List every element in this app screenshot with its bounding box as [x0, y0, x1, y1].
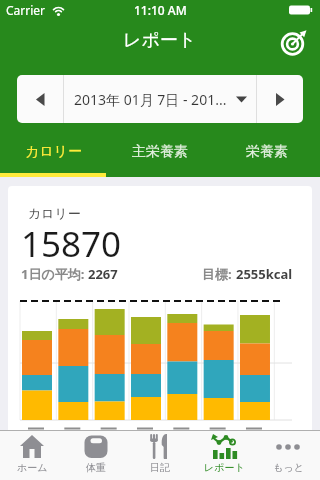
staticText: 目標: [202, 265, 236, 283]
staticText: 1日の平均: [21, 265, 88, 283]
staticText: 主栄養素 [132, 143, 188, 161]
staticText: 2267 [88, 265, 118, 283]
staticText: レポート [204, 461, 245, 474]
button[interactable]: 主栄養素 [106, 128, 213, 177]
button[interactable]: 栄養素 [213, 128, 320, 177]
staticText: ホーム [17, 461, 48, 474]
button[interactable]: 2013年 01月 7日 - 201... [64, 75, 256, 123]
staticText: 2013年 01月 7日 - 201... [74, 90, 227, 109]
staticText: 11:10 AM [134, 2, 187, 18]
staticText: 栄養素 [246, 143, 288, 161]
staticText: もっと [273, 461, 304, 474]
staticText: 日記 [150, 461, 170, 474]
button[interactable]: もっと [256, 430, 320, 480]
button[interactable]: 体重 [64, 430, 128, 480]
staticText: 2555kcal [236, 265, 293, 283]
button[interactable]: 日記 [128, 430, 192, 480]
button[interactable]: レポート [192, 430, 256, 480]
staticText: 体重 [86, 461, 106, 474]
staticText: 15870 [21, 220, 122, 268]
staticText: カロリー [28, 205, 81, 221]
staticText: カロリー [25, 143, 82, 161]
button[interactable] [257, 75, 303, 123]
button[interactable]: ホーム [0, 430, 64, 480]
staticText: Carrier [6, 2, 46, 18]
button[interactable] [281, 30, 307, 56]
staticText: レポート [123, 29, 197, 52]
button[interactable]: カロリー [0, 128, 106, 177]
button[interactable] [17, 75, 63, 123]
